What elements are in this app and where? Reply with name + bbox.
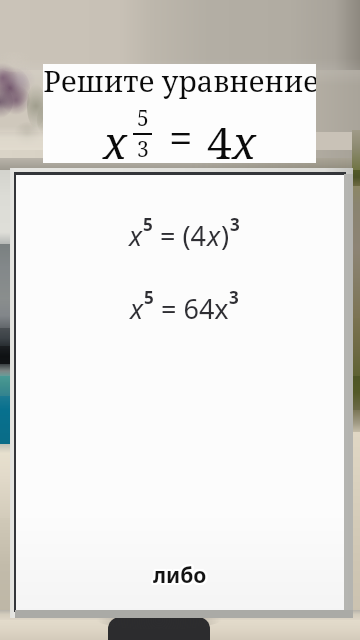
staticText: x — [129, 217, 143, 254]
staticText: либо — [153, 559, 207, 588]
staticText: либо — [154, 561, 208, 590]
staticText: = — [169, 109, 193, 166]
staticText: 3 — [230, 213, 240, 236]
staticText: либо — [152, 563, 206, 592]
staticText: либо — [153, 560, 207, 589]
staticText: либо — [153, 561, 207, 590]
staticText: ) — [221, 217, 230, 254]
button[interactable]: либо — [153, 561, 207, 590]
staticText: либо — [154, 563, 208, 592]
staticText: = 64x — [161, 290, 229, 327]
staticText: либо — [151, 562, 205, 591]
staticText: 4 — [207, 112, 232, 172]
staticText: x — [130, 290, 144, 327]
staticText: либо — [155, 560, 209, 589]
staticText: x — [207, 217, 221, 254]
staticText: либо — [152, 559, 206, 588]
staticText: либо — [154, 562, 208, 591]
staticText: = (4 — [160, 217, 207, 254]
staticText: либо — [152, 562, 206, 591]
staticText: либо — [155, 561, 209, 590]
staticText: либо — [152, 561, 206, 590]
staticText: 5 — [143, 213, 153, 236]
staticText: либо — [153, 563, 207, 592]
staticText: либо — [155, 562, 209, 591]
staticText: либо — [151, 561, 205, 590]
staticText: 3 — [229, 286, 239, 309]
staticText: x — [232, 112, 257, 172]
staticText: либо — [154, 560, 208, 589]
staticText: либо — [151, 560, 205, 589]
staticText: 5 — [144, 286, 154, 309]
staticText: 3 — [137, 135, 149, 164]
staticText: либо — [153, 562, 207, 591]
button[interactable]: Решите уравнение — [43, 64, 316, 163]
staticText: x — [103, 112, 128, 172]
staticText: 5 — [137, 104, 149, 133]
staticText: либо — [154, 559, 208, 588]
staticText: Решите уравнение — [43, 61, 316, 100]
staticText: либо — [152, 560, 206, 589]
